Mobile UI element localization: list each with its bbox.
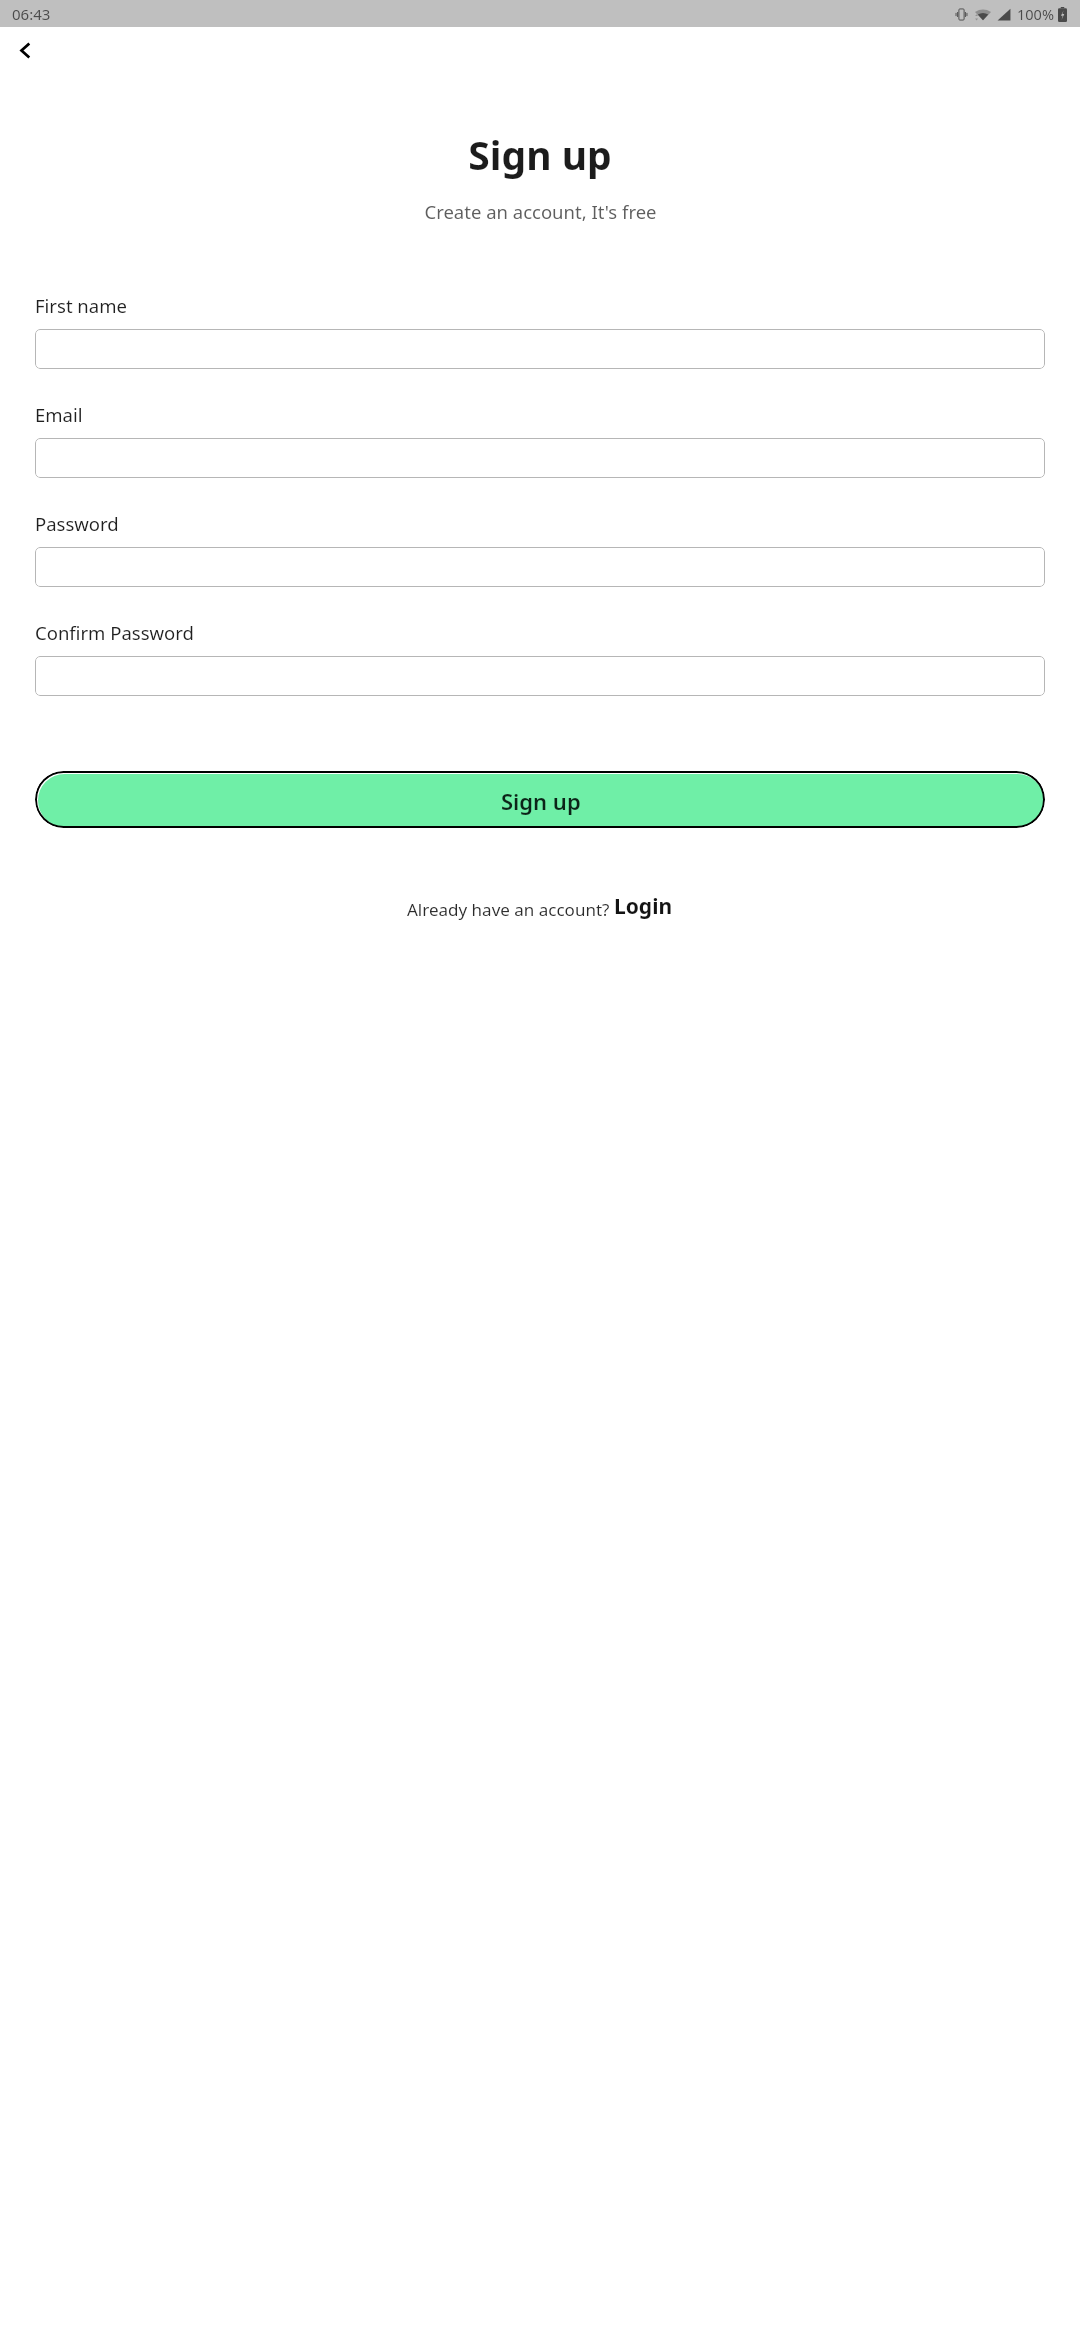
staticText: Sign up	[468, 128, 612, 181]
button[interactable]	[35, 438, 1045, 478]
button[interactable]	[35, 329, 1045, 369]
button[interactable]	[35, 547, 1045, 587]
button[interactable]	[35, 656, 1045, 696]
staticText: 06:43	[12, 4, 51, 24]
button[interactable]: Login	[614, 892, 673, 921]
staticText: Email	[35, 402, 83, 427]
button[interactable]: Back	[8, 34, 40, 66]
button[interactable]: Sign up	[35, 771, 1045, 828]
staticText: First name	[35, 293, 127, 318]
staticText: Confirm Password	[35, 620, 194, 645]
staticText: 100%	[1017, 4, 1054, 24]
staticText: Create an account, It's free	[424, 199, 657, 224]
staticText: Already have an account?	[407, 898, 614, 921]
staticText: Sign up	[501, 786, 581, 816]
staticText: Password	[35, 511, 119, 536]
staticText: Login	[614, 892, 673, 921]
